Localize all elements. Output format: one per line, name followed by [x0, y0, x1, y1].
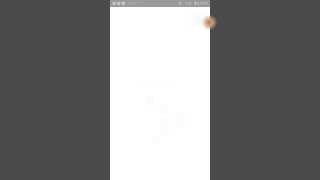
button[interactable]: Account [194, 8, 210, 34]
